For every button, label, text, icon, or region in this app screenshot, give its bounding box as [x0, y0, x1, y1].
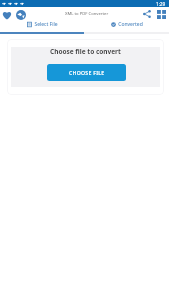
button[interactable]: CHOOSE FILE	[47, 64, 126, 81]
button[interactable]: Favorites	[1, 9, 12, 20]
button[interactable]: Share	[141, 8, 153, 20]
staticText: Select File	[34, 21, 58, 28]
button[interactable]: Converted	[84, 21, 169, 28]
staticText: 1:29	[156, 1, 166, 7]
staticText: CHOOSE FILE	[69, 69, 105, 76]
staticText: XML to PDF Converter	[65, 11, 109, 17]
button[interactable]: Language	[15, 9, 26, 20]
button[interactable]: Select File	[0, 21, 84, 28]
staticText: Converted	[118, 21, 143, 28]
button[interactable]: Apps	[155, 8, 167, 20]
staticText: Choose file to convert	[50, 47, 121, 56]
